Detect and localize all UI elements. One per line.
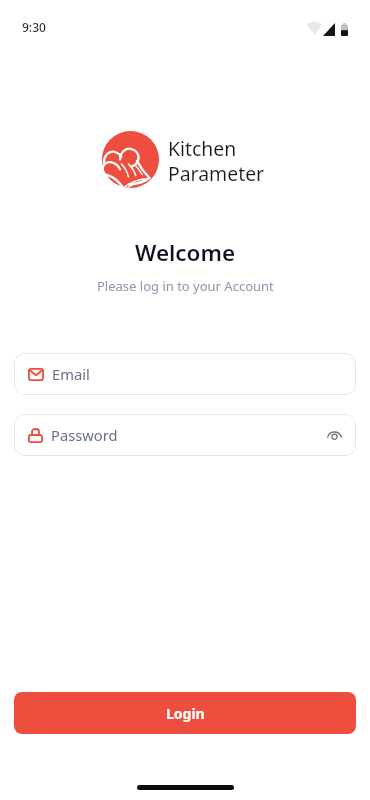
staticText: 9:30 xyxy=(22,19,46,35)
staticText: Please log in to your Account xyxy=(97,277,274,295)
staticText: Welcome xyxy=(135,237,235,268)
staticText: Password xyxy=(51,425,118,445)
staticText: Email xyxy=(52,364,90,384)
staticText: Kitchen xyxy=(168,135,237,161)
button[interactable]: Show password xyxy=(322,423,346,447)
staticText: Login xyxy=(166,704,205,723)
staticText: Parameter xyxy=(168,160,265,186)
button[interactable]: Password xyxy=(14,414,356,456)
button[interactable]: Login xyxy=(14,692,356,734)
button[interactable]: Email xyxy=(14,353,356,395)
